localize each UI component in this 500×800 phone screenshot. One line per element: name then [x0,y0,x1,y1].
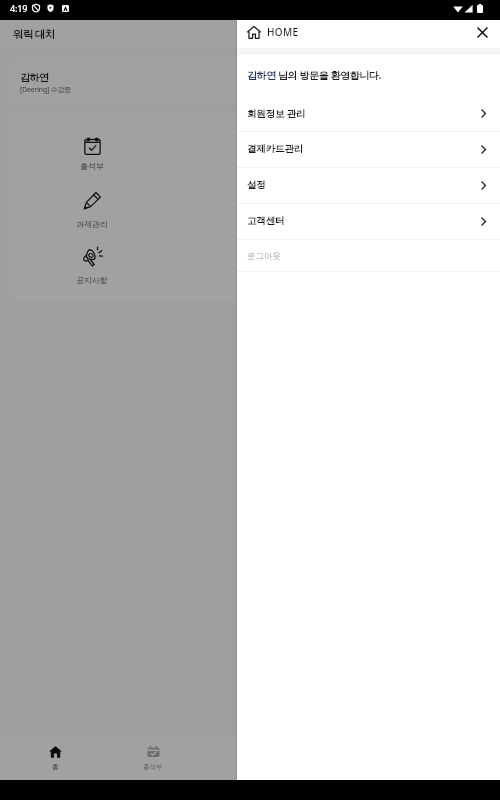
button[interactable]: 결제카드관리 [237,131,500,167]
button[interactable]: 홈 [6,736,104,780]
button[interactable]: 출석부 [57,137,127,171]
staticText: 고객센터 [247,215,285,227]
staticText: 4:19 [10,2,28,14]
button[interactable]: 출석부 [104,736,202,780]
button[interactable]: 고객센터 [237,203,500,239]
button[interactable]: HOME [247,25,299,39]
staticText: 출석부 [143,763,163,771]
staticText: 설정 [247,179,266,191]
staticText: 워릭 대치 [13,27,55,41]
staticText: 김하연 님의 방문을 환영합니다. [247,68,381,82]
button[interactable]: 설정 [237,167,500,203]
button[interactable]: 회원정보 관리 [237,95,500,131]
staticText: 로그아웃 [247,251,281,262]
staticText: 결제카드관리 [247,143,304,155]
staticText: 회원정보 관리 [247,107,306,120]
staticText: 출석부 [80,161,104,171]
staticText: [Deering] 수강중 [20,85,72,95]
staticText: 과제관리 [76,219,108,229]
button[interactable]: 과제관리 [57,191,127,229]
staticText: 홈 [52,763,59,771]
button[interactable]: Close [471,21,493,43]
button[interactable]: 공지사항 [57,246,127,285]
button[interactable]: 김하연 [10,59,490,104]
staticText: 공지사항 [76,275,108,285]
button[interactable]: 로그아웃 [237,239,500,272]
staticText: HOME [267,25,299,39]
staticText: 김하연 [20,71,49,84]
